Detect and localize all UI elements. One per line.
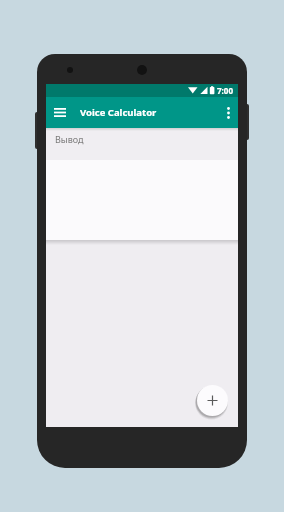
staticText: Вывод (55, 133, 84, 145)
button[interactable] (197, 385, 228, 416)
button[interactable] (218, 97, 238, 128)
button[interactable] (46, 97, 74, 128)
staticText: 7:00 (217, 85, 233, 96)
staticText: Voice Calculator (80, 106, 157, 119)
